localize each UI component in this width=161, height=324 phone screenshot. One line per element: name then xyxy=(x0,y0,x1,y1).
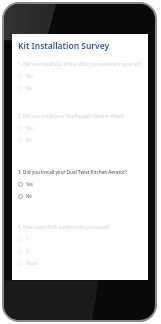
staticText: 2. Did you install your Heathguard Showe… xyxy=(18,113,124,119)
button[interactable]: Select No xyxy=(18,136,144,144)
other: Select No xyxy=(18,138,23,143)
staticText: Kit Installation Survey xyxy=(18,40,110,52)
staticText: No xyxy=(26,193,32,199)
staticText: Yes xyxy=(26,181,33,187)
staticText: None xyxy=(26,260,38,266)
other: Select 2 xyxy=(18,249,23,254)
staticText: 1. Did you install ALL of the LEDs you r… xyxy=(18,61,142,67)
other: Select None xyxy=(18,261,23,266)
other: Select 1 xyxy=(18,237,23,242)
button[interactable]: Select No xyxy=(18,192,144,200)
staticText: 4. How many Bath Aerators did you instal… xyxy=(18,224,111,230)
staticText: 2 xyxy=(26,248,29,254)
other: Select Yes xyxy=(18,74,23,79)
button[interactable]: Select Yes xyxy=(18,124,144,132)
other: Select No xyxy=(18,194,23,199)
staticText: Yes xyxy=(26,125,33,131)
staticText: 3. Did you install your Dual Twist Kitch… xyxy=(18,169,128,175)
staticText: Yes xyxy=(26,73,33,79)
button[interactable]: Select Yes xyxy=(18,180,144,188)
staticText: 1 xyxy=(26,236,29,242)
button[interactable]: Select No xyxy=(18,84,144,92)
button[interactable]: Select Yes xyxy=(18,72,144,80)
other: Select Yes xyxy=(18,182,23,187)
other: Select Yes xyxy=(18,126,23,131)
staticText: No xyxy=(26,85,32,91)
other: Select No xyxy=(18,86,23,91)
button[interactable]: Select None xyxy=(18,259,144,267)
staticText: No xyxy=(26,137,32,143)
